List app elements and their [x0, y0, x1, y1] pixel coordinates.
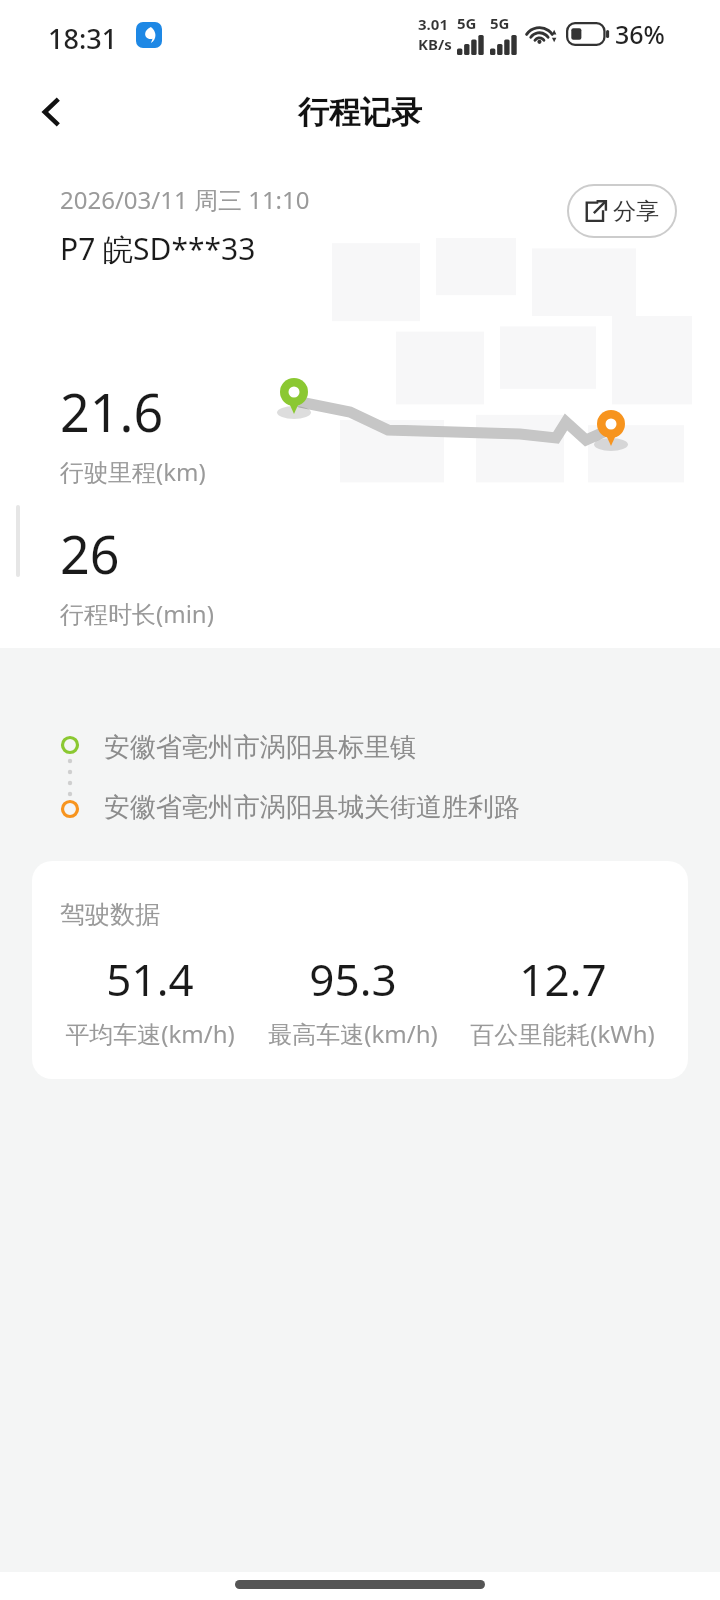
staticText: 21.6	[60, 376, 164, 447]
staticText: 18:31	[48, 20, 118, 57]
staticText: 51.4	[106, 949, 194, 1009]
staticText: 分享	[613, 197, 659, 226]
staticText: 安徽省亳州市涡阳县城关街道胜利路	[104, 791, 520, 824]
staticText: 5G	[457, 13, 477, 33]
button[interactable]: 分享	[568, 185, 676, 237]
staticText: KB/s	[418, 34, 452, 54]
staticText: 12.7	[519, 949, 607, 1009]
staticText: 平均车速(km/h)	[65, 1017, 235, 1050]
staticText: 行程记录	[298, 93, 422, 132]
staticText: 5G	[490, 13, 510, 33]
staticText: 最高车速(km/h)	[268, 1017, 438, 1050]
staticText: 安徽省亳州市涡阳县标里镇	[104, 731, 416, 764]
staticText: 26	[60, 518, 120, 589]
staticText: 95.3	[309, 949, 397, 1009]
staticText: 百公里能耗(kWh)	[470, 1017, 655, 1050]
staticText: 驾驶数据	[60, 899, 160, 930]
staticText: 行驶里程(km)	[60, 455, 206, 488]
staticText: 3.01	[418, 14, 448, 34]
button[interactable]: Back	[20, 80, 84, 144]
staticText: 36%	[615, 17, 665, 51]
staticText: 行程时长(min)	[60, 597, 214, 630]
staticText: 2026/03/11 周三 11:10	[60, 183, 310, 216]
staticText: P7 皖SD***33	[60, 228, 256, 269]
button[interactable]: 驾驶数据	[32, 861, 688, 1079]
